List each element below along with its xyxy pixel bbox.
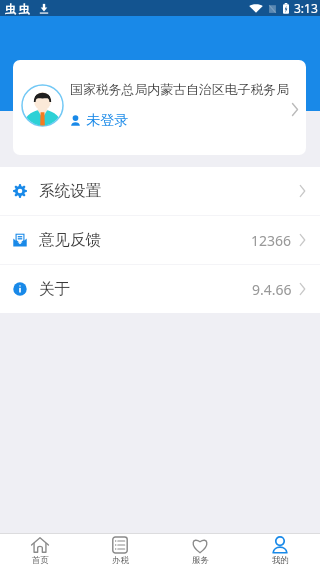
button[interactable]: 关于 — [0, 265, 320, 313]
staticText: 12366 — [251, 231, 292, 250]
staticText: 3:13 — [294, 0, 318, 16]
staticText: 意见反馈 — [39, 230, 102, 250]
staticText: 关于 — [39, 279, 71, 299]
button[interactable]: 意见反馈 — [0, 216, 320, 264]
staticText: 服务 — [192, 555, 209, 566]
staticText: 我的 — [272, 555, 289, 566]
button[interactable]: 办税 — [80, 534, 160, 568]
button[interactable]: 首页 — [0, 534, 80, 568]
staticText: 未登录 — [86, 111, 129, 129]
button[interactable]: 服务 — [160, 534, 240, 568]
staticText: 系统设置 — [39, 181, 102, 201]
staticText: 国家税务总局内蒙古自治区电子税务局 — [70, 82, 290, 98]
staticText: 办税 — [112, 555, 129, 566]
button[interactable]: 我的 — [240, 534, 320, 568]
staticText: 虫 虫 — [5, 1, 30, 16]
button[interactable]: 系统设置 — [0, 167, 320, 215]
staticText: 首页 — [32, 555, 49, 566]
staticText: 9.4.66 — [252, 280, 292, 299]
button[interactable]: 账号信息 未登录 — [13, 60, 306, 155]
